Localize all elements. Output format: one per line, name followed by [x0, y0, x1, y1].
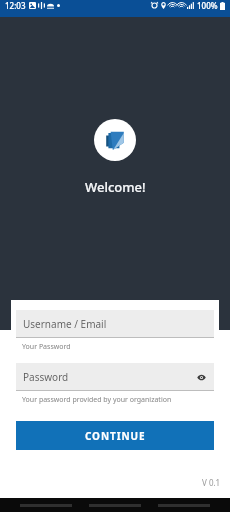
- button[interactable]: Password: [16, 363, 214, 391]
- staticText: Username / Email: [23, 317, 107, 331]
- button[interactable]: CONTINUE: [16, 421, 214, 450]
- button[interactable]: Show password: [195, 371, 207, 383]
- button[interactable]: Username / Email: [16, 310, 214, 338]
- staticText: Welcome!: [85, 178, 146, 196]
- staticText: V 0.1: [202, 477, 221, 488]
- staticText: Your Password: [22, 342, 71, 352]
- staticText: CONTINUE: [85, 429, 146, 443]
- staticText: 12:03: [5, 0, 26, 11]
- staticText: Password: [23, 370, 69, 384]
- staticText: Your password provided by your organizat…: [22, 395, 172, 405]
- staticText: 100%: [197, 0, 218, 11]
